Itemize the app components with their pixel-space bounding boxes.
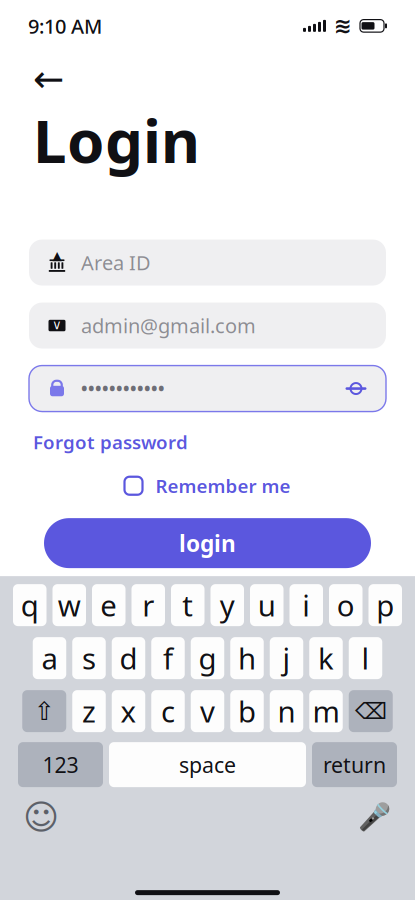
staticText: x	[120, 692, 136, 731]
button[interactable]: m	[309, 690, 343, 732]
button[interactable]: p	[368, 584, 402, 626]
staticText: l	[361, 639, 369, 678]
button[interactable]: n	[270, 690, 303, 732]
button[interactable]: space	[109, 742, 306, 787]
staticText: ←	[33, 58, 64, 100]
staticText: ∨	[52, 317, 62, 332]
staticText: ⌫	[355, 698, 387, 724]
button[interactable]: f	[151, 637, 185, 679]
staticText: i	[302, 586, 310, 625]
button[interactable]: d	[112, 637, 145, 679]
staticText: q	[21, 586, 39, 625]
staticText: b	[238, 692, 256, 731]
button[interactable]: c	[151, 690, 185, 732]
staticText: s	[82, 639, 96, 678]
staticText: t	[182, 586, 193, 625]
button[interactable]: z	[72, 690, 106, 732]
staticText: j	[282, 639, 290, 678]
button[interactable]: Remember me	[124, 473, 290, 498]
staticText: ••••••••••••	[81, 377, 165, 400]
button[interactable]: Back	[33, 58, 75, 100]
staticText: h	[238, 639, 256, 678]
staticText: 123	[42, 750, 78, 779]
button[interactable]: t	[171, 584, 204, 626]
button[interactable]: a	[33, 637, 66, 679]
staticText: v	[200, 692, 215, 731]
staticText: o	[337, 586, 355, 625]
button[interactable]: ⌫	[349, 690, 393, 732]
button[interactable]: e	[92, 584, 125, 626]
button[interactable]: o	[329, 584, 362, 626]
staticText: d	[119, 639, 137, 678]
button[interactable]: Show password	[344, 378, 368, 398]
staticText: a	[41, 639, 57, 678]
staticText: c	[161, 692, 175, 731]
staticText: w	[58, 586, 81, 625]
staticText: Area ID	[81, 249, 151, 276]
button[interactable]: y	[210, 584, 244, 626]
staticText: Remember me	[155, 473, 290, 498]
button[interactable]: h	[230, 637, 264, 679]
button[interactable]: v	[191, 690, 224, 732]
staticText: return	[323, 750, 386, 779]
staticText: 9:10 AM	[28, 13, 102, 39]
staticText: admin@gmail.com	[81, 312, 256, 339]
button[interactable]: login	[44, 518, 371, 568]
staticText: r	[142, 586, 154, 625]
staticText: ▲	[52, 249, 61, 262]
button[interactable]: 123	[18, 742, 103, 787]
button[interactable]: i	[289, 584, 323, 626]
staticText: ≋	[334, 14, 352, 38]
button[interactable]: j	[270, 637, 303, 679]
staticText: space	[179, 750, 236, 779]
staticText: n	[277, 692, 295, 731]
button[interactable]: g	[191, 637, 224, 679]
staticText: e	[100, 586, 117, 625]
staticText: ☺	[23, 797, 59, 837]
staticText: Login	[33, 100, 200, 180]
button[interactable]: r	[131, 584, 165, 626]
staticText: y	[220, 586, 235, 625]
staticText: f	[163, 639, 173, 678]
button[interactable]: return	[312, 742, 397, 787]
staticText: k	[318, 639, 334, 678]
button[interactable]: s	[72, 637, 106, 679]
staticText: 🎤	[357, 802, 390, 832]
staticText: g	[198, 639, 216, 678]
staticText: ⇧	[34, 697, 55, 726]
button[interactable]: x	[112, 690, 145, 732]
button[interactable]: Dictation	[353, 799, 395, 835]
staticText: Forgot password	[33, 429, 188, 454]
button[interactable]: u	[250, 584, 283, 626]
staticText: m	[312, 692, 339, 731]
button[interactable]: Forgot password	[33, 429, 188, 454]
button[interactable]: Emoji keyboard	[20, 799, 62, 835]
staticText: u	[258, 586, 276, 625]
button[interactable]: l	[349, 637, 382, 679]
staticText: z	[82, 692, 96, 731]
button[interactable]: w	[52, 584, 86, 626]
button[interactable]: q	[13, 584, 46, 626]
staticText: login	[179, 528, 236, 558]
button[interactable]: b	[230, 690, 264, 732]
button[interactable]: ⇧	[22, 690, 66, 732]
staticText: p	[376, 586, 394, 625]
button[interactable]: k	[309, 637, 343, 679]
